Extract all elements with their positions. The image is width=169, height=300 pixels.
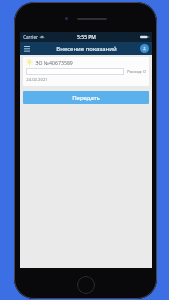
staticText: Carrier <box>23 34 38 40</box>
staticText: 24.02.2021 <box>26 77 48 83</box>
staticText: 5:55 PM <box>77 34 96 41</box>
button[interactable] <box>26 68 124 75</box>
button[interactable]: Menu <box>22 44 32 54</box>
button[interactable]: Account <box>140 44 149 53</box>
staticText: ЭО №40673589 <box>35 59 73 66</box>
button[interactable]: Передать <box>23 91 149 104</box>
button[interactable]: Home <box>77 276 95 294</box>
staticText: Передать <box>72 94 100 102</box>
staticText: Расход: 0 <box>127 69 146 75</box>
button[interactable]: ЭО №40673589 <box>23 57 149 86</box>
staticText: Внесение показаний <box>56 45 117 53</box>
